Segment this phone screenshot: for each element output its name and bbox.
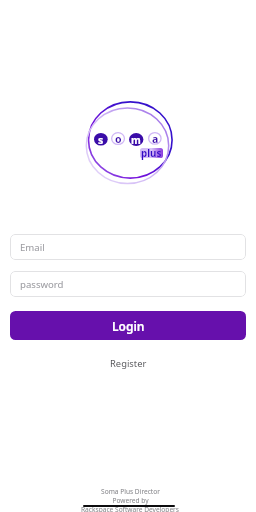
button[interactable]: Email xyxy=(10,234,246,260)
staticText: Soma Plus Director xyxy=(101,487,160,496)
staticText: Rackspace Software Developers xyxy=(81,505,179,512)
staticText: Powered by xyxy=(112,496,149,505)
staticText: m xyxy=(131,133,141,147)
staticText: Login xyxy=(112,318,145,334)
button[interactable]: password xyxy=(10,271,246,297)
button[interactable]: Login xyxy=(10,311,246,340)
button[interactable]: Register xyxy=(105,352,152,375)
staticText: Email xyxy=(20,241,45,254)
staticText: a xyxy=(152,132,159,146)
staticText: password xyxy=(20,278,64,291)
staticText: s xyxy=(98,133,104,147)
staticText: o xyxy=(115,132,122,146)
staticText: plus xyxy=(141,147,162,160)
